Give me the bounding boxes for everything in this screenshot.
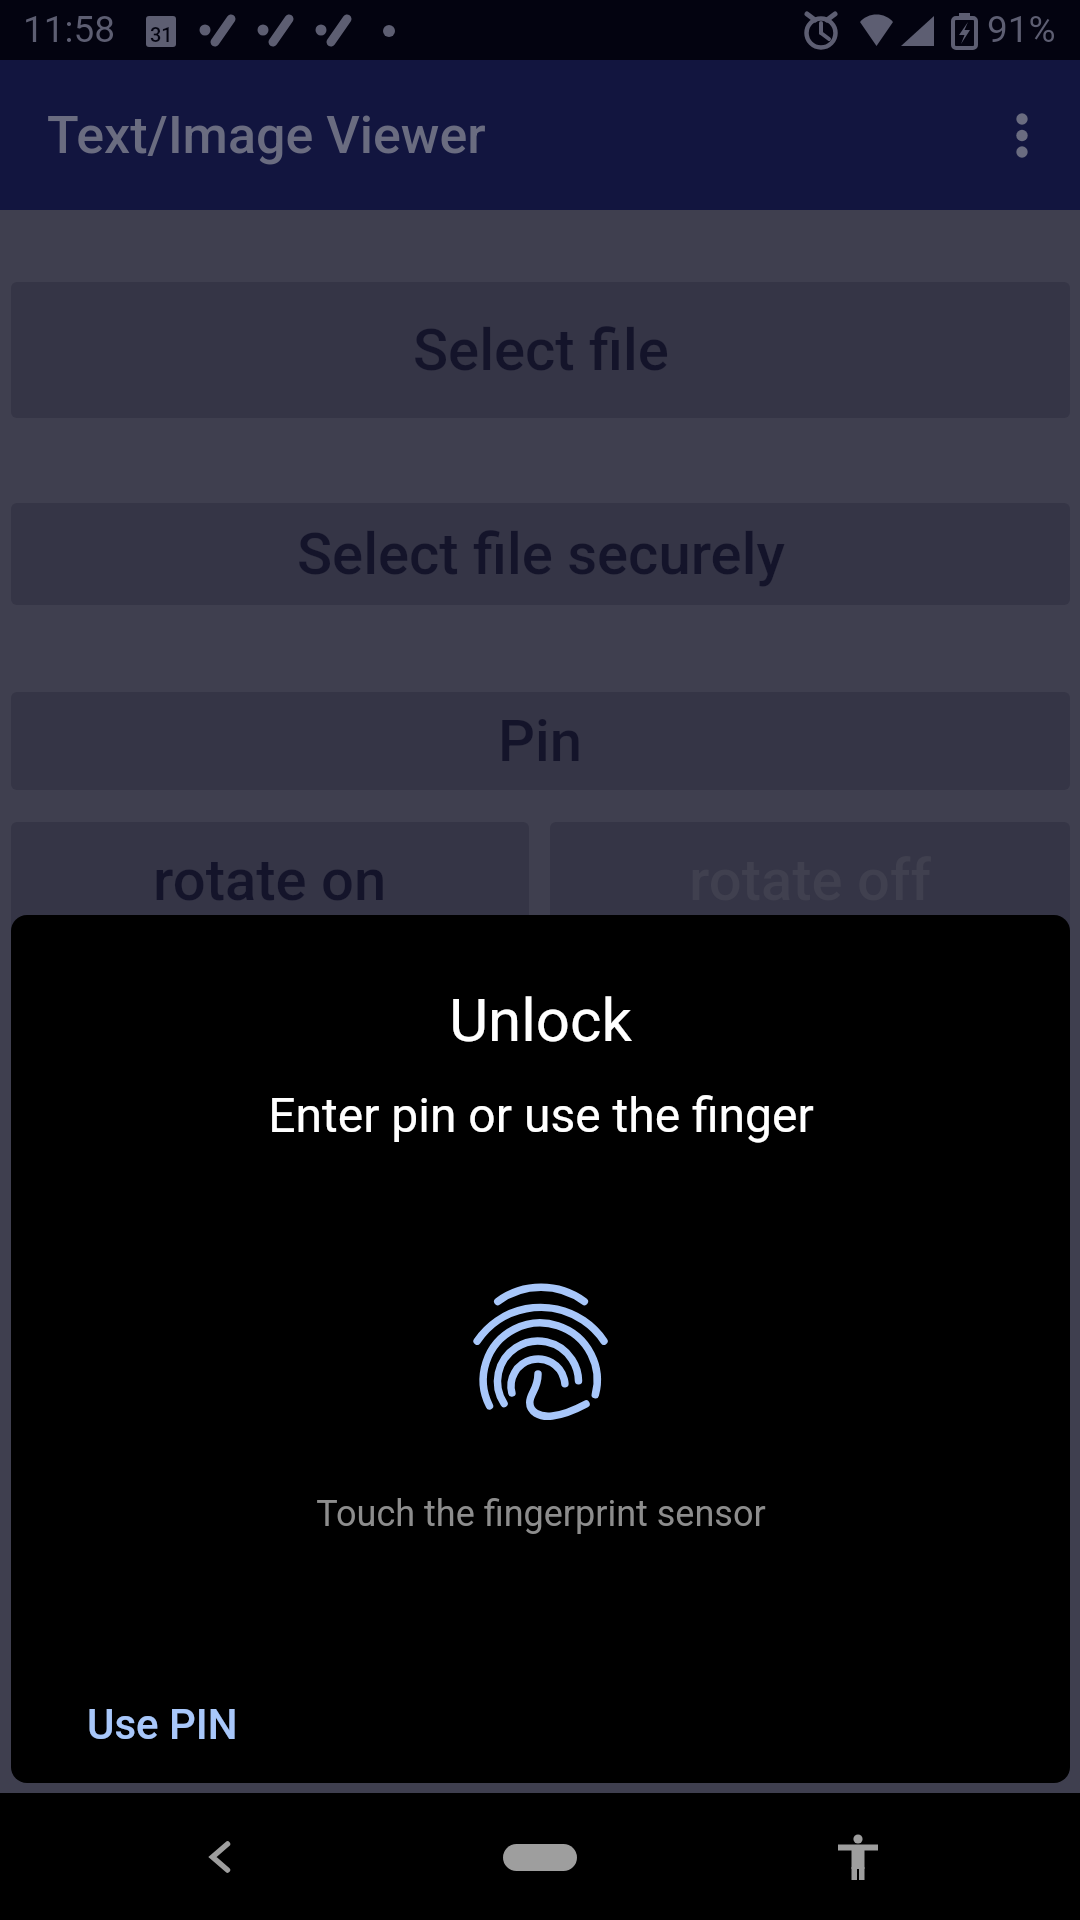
- staticText: Enter pin or use the finger: [268, 1087, 814, 1143]
- button[interactable]: Home: [480, 1822, 600, 1892]
- button[interactable]: rotate on: [11, 822, 529, 937]
- staticText: Unlock: [449, 985, 632, 1055]
- staticText: 31: [150, 23, 173, 46]
- staticText: 91%: [987, 8, 1056, 51]
- staticText: Pin: [498, 707, 583, 775]
- button[interactable]: Select file securely: [11, 503, 1070, 605]
- staticText: Touch the fingerprint sensor: [316, 1493, 766, 1535]
- staticText: Select file securely: [297, 520, 785, 588]
- button[interactable]: Accessibility: [813, 1812, 903, 1902]
- staticText: Text/Image Viewer: [47, 105, 486, 166]
- button[interactable]: rotate off: [550, 822, 1070, 937]
- staticText: 11:58: [23, 8, 116, 51]
- button[interactable]: Select file: [11, 282, 1070, 418]
- staticText: Use PIN: [87, 1700, 238, 1749]
- button[interactable]: More options: [977, 90, 1067, 180]
- staticText: rotate off: [689, 846, 931, 914]
- staticText: rotate on: [153, 846, 387, 914]
- button[interactable]: Back: [175, 1812, 265, 1902]
- button[interactable]: Pin: [11, 692, 1070, 790]
- staticText: Select file: [413, 316, 669, 384]
- button[interactable]: Use PIN: [87, 1700, 238, 1749]
